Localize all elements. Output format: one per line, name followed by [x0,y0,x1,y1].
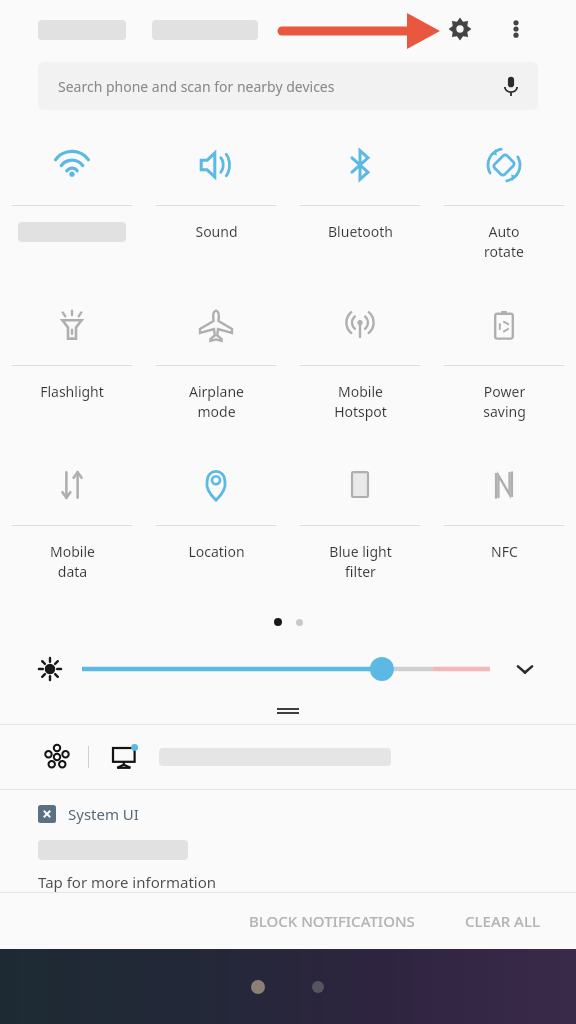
staticText: Sound [195,222,238,241]
button[interactable] [0,120,144,280]
staticText: Mobile data [50,542,95,582]
staticText: Search phone and scan for nearby devices [58,77,335,96]
staticText: Bluetooth [328,222,393,241]
button[interactable]: Recents [241,970,275,1004]
button[interactable]: Mobile data [0,440,144,600]
staticText: Tap for more information [38,872,217,892]
button[interactable]: Sound [144,120,288,280]
button[interactable]: Blue light filter [288,440,432,600]
staticText: BLOCK NOTIFICATIONS [249,911,415,931]
button[interactable]: Expand brightness [508,652,542,686]
button[interactable] [82,652,490,686]
other: SmartThings [40,740,74,774]
button[interactable]: Airplane mode [144,280,288,440]
button[interactable]: Auto rotate [432,120,576,280]
button[interactable]: Settings [438,7,482,51]
button[interactable]: More options [494,7,538,51]
button[interactable]: BLOCK NOTIFICATIONS [231,899,433,943]
staticText: Location [188,542,245,561]
button[interactable]: Brightness [34,653,66,685]
staticText: Blue light filter [329,542,392,582]
button[interactable]: Mobile Hotspot [288,280,432,440]
staticText: Mobile Hotspot [334,382,387,422]
button[interactable]: Power saving [432,280,576,440]
button[interactable]: Back [301,970,335,1004]
button[interactable]: Location [144,440,288,600]
staticText: System UI [68,804,139,824]
staticText: Auto rotate [484,222,524,262]
button[interactable]: System UI [0,790,576,892]
other: Cast [107,739,143,775]
staticText: NFC [491,542,518,561]
staticText: CLEAR ALL [465,911,540,931]
button[interactable]: Search phone and scan for nearby devices [38,62,538,110]
button[interactable]: NFC [432,440,576,600]
button[interactable]: Bluetooth [288,120,432,280]
staticText: Airplane mode [189,382,244,422]
staticText: Power saving [483,382,526,422]
button[interactable]: CLEAR ALL [447,899,558,943]
button[interactable]: SmartThings [0,725,576,789]
staticText: Flashlight [40,382,104,401]
button[interactable]: Flashlight [0,280,144,440]
